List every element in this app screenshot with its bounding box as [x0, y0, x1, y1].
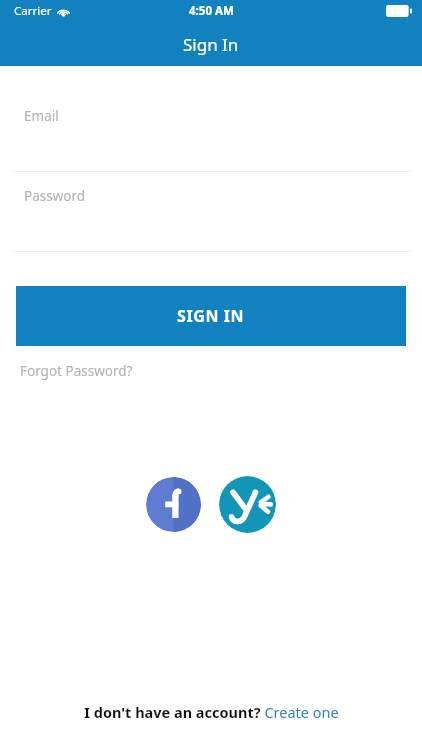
staticText: Password: [24, 187, 86, 205]
button[interactable]: Password: [0, 172, 422, 251]
button[interactable]: Sign in with Yammer: [219, 476, 276, 533]
staticText: Sign In: [183, 33, 239, 56]
staticText: I don't have an account? Create one: [84, 702, 339, 722]
button[interactable]: SIGN IN: [16, 286, 406, 346]
staticText: SIGN IN: [177, 305, 245, 327]
button[interactable]: I don't have an account? Create one: [76, 698, 347, 726]
staticText: 4:50 AM: [189, 3, 234, 19]
staticText: Carrier: [14, 3, 52, 19]
staticText: Email: [24, 107, 59, 125]
staticText: Forgot Password?: [20, 362, 133, 380]
button[interactable]: Email: [0, 66, 422, 171]
button[interactable]: Forgot Password?: [14, 358, 139, 384]
button[interactable]: Sign in with Facebook: [146, 477, 201, 532]
